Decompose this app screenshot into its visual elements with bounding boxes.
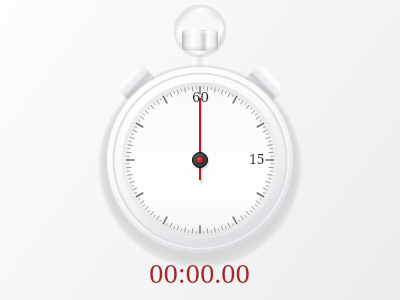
staticText: 00:00.00 <box>149 255 251 290</box>
button[interactable]: Stopwatch 00:00.00, tap to start <box>0 0 400 300</box>
staticText: 60 <box>192 86 209 106</box>
staticText: 15 <box>249 149 265 168</box>
